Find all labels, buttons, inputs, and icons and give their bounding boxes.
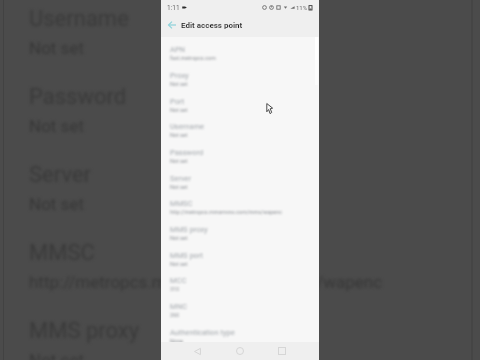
staticText: Not set <box>170 107 188 113</box>
staticText: Not set <box>170 261 188 267</box>
staticText: Server <box>170 174 192 183</box>
button[interactable]: Recent apps <box>273 342 291 360</box>
staticText: 260 <box>170 312 180 318</box>
button[interactable]: APN <box>161 41 319 67</box>
button[interactable]: Password <box>161 144 319 170</box>
staticText: Server <box>29 162 92 188</box>
button[interactable]: Username <box>161 118 319 144</box>
button[interactable]: MMS port <box>161 247 319 273</box>
staticText: Not set <box>170 158 188 164</box>
button[interactable]: MMS proxy <box>161 221 319 247</box>
staticText: Edit access point <box>181 21 243 30</box>
button[interactable]: Server <box>161 170 319 196</box>
staticText: MMSC <box>170 199 193 208</box>
button[interactable]: Home <box>231 342 249 360</box>
staticText: Not set <box>170 184 188 190</box>
staticText: Password <box>29 84 127 110</box>
staticText: APN <box>170 45 185 54</box>
button[interactable]: Authentication type <box>161 324 319 342</box>
staticText: MMS proxy <box>170 225 208 234</box>
staticText: Not set <box>29 116 84 136</box>
staticText: Not set <box>170 235 188 241</box>
staticText: MNC <box>170 302 187 311</box>
staticText: MMS port <box>170 251 204 260</box>
button[interactable]: Port <box>161 93 319 119</box>
staticText: 1:11 <box>167 4 180 12</box>
staticText: http://metropcs.mmsmvno.com/mms/wapenc <box>29 272 383 292</box>
staticText: 310 <box>170 286 180 292</box>
staticText: Password <box>170 148 204 157</box>
staticText: MCC <box>170 276 187 285</box>
button[interactable]: Back <box>188 342 206 360</box>
staticText: Authentication type <box>170 328 235 337</box>
staticText: fast.metropcs.com <box>170 55 216 61</box>
button[interactable]: MMSC <box>161 195 319 221</box>
staticText: Username <box>170 122 205 131</box>
staticText: Not set <box>29 194 84 214</box>
staticText: http://metropcs.mmsmvno.com/mms/wapenc <box>170 209 282 215</box>
staticText: Port <box>170 97 185 106</box>
staticText: Not set <box>29 350 84 360</box>
staticText: Not set <box>170 132 188 138</box>
staticText: Username <box>29 6 129 32</box>
staticText: 11% <box>296 4 308 11</box>
button[interactable]: MCC <box>161 272 319 298</box>
staticText: None <box>170 338 183 342</box>
staticText: Not set <box>170 81 188 87</box>
button[interactable]: MNC <box>161 298 319 324</box>
button[interactable]: Navigate up <box>165 18 178 31</box>
staticText: MMSC <box>29 240 95 266</box>
staticText: MMS proxy <box>29 318 140 344</box>
staticText: Not set <box>29 38 84 58</box>
button[interactable]: Proxy <box>161 67 319 93</box>
staticText: Proxy <box>170 71 189 80</box>
